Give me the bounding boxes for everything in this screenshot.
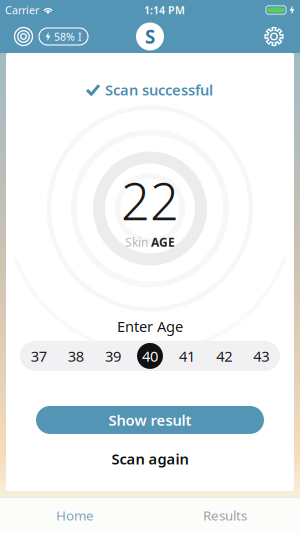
button[interactable]: Age 40	[131, 341, 169, 371]
button[interactable]: Scan again	[111, 449, 188, 468]
staticText: AGE	[151, 234, 175, 250]
staticText: Scan successful	[105, 80, 213, 99]
button[interactable]: Age 42	[206, 341, 243, 371]
button[interactable]: Battery 58%	[39, 28, 88, 45]
staticText: Carrier	[5, 3, 39, 17]
staticText: 38	[68, 346, 84, 366]
button[interactable]: Settings	[265, 27, 283, 45]
button[interactable]: Age 37	[20, 341, 57, 371]
staticText: Results	[203, 506, 247, 524]
button[interactable]: Show result	[36, 406, 264, 434]
staticText: Scan again	[111, 449, 188, 468]
button[interactable]: Age 38	[57, 341, 94, 371]
staticText: 43	[253, 346, 269, 366]
staticText: 41	[179, 346, 195, 366]
button[interactable]: Skin scanner	[136, 22, 164, 50]
button[interactable]: Scan	[14, 27, 33, 46]
button[interactable]: Age 43	[243, 341, 280, 371]
button[interactable]: Home	[0, 498, 150, 533]
staticText: 58% I	[54, 29, 82, 44]
button[interactable]: Age 41	[169, 341, 206, 371]
staticText: Skin	[125, 234, 148, 250]
staticText: S	[145, 24, 155, 49]
button[interactable]: Results	[150, 498, 300, 533]
staticText: 37	[31, 346, 47, 366]
staticText: 40	[142, 346, 158, 366]
staticText: 39	[105, 346, 121, 366]
staticText: 22	[121, 167, 179, 234]
staticText: Home	[56, 506, 94, 524]
staticText: Enter Age	[117, 316, 183, 336]
staticText: Show result	[108, 410, 191, 430]
staticText: 42	[216, 346, 232, 366]
button[interactable]: Age 39	[94, 341, 131, 371]
staticText: 1:14 PM	[144, 3, 185, 17]
